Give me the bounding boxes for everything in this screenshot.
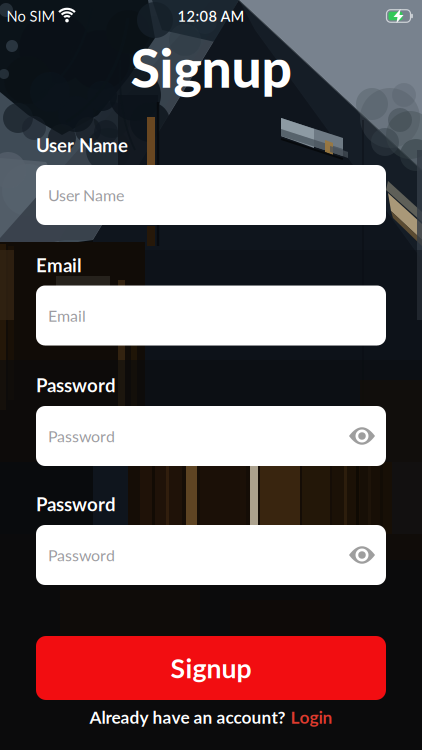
staticText: Email	[36, 254, 82, 276]
button[interactable]: User Name	[36, 165, 386, 225]
staticText: Password	[36, 374, 116, 396]
button[interactable]: Login	[290, 707, 332, 727]
button[interactable]: Show password	[349, 545, 375, 565]
button[interactable]: Show password	[349, 426, 375, 446]
staticText: User Name	[48, 185, 124, 205]
button[interactable]: Signup	[36, 636, 386, 700]
staticText: User Name	[36, 134, 128, 156]
staticText: Signup	[170, 652, 251, 684]
staticText: 12:08 AM	[177, 7, 244, 25]
button[interactable]: Password	[36, 406, 386, 466]
staticText: Password	[48, 545, 115, 565]
staticText: No SIM	[6, 7, 55, 25]
staticText: Already have an account?	[89, 707, 285, 727]
staticText: Password	[36, 493, 116, 515]
staticText: Password	[48, 426, 115, 446]
staticText: Login	[290, 707, 332, 727]
staticText: Email	[48, 306, 86, 325]
button[interactable]: Password	[36, 525, 386, 585]
button[interactable]: Email	[36, 285, 386, 345]
staticText: Signup	[130, 35, 291, 99]
